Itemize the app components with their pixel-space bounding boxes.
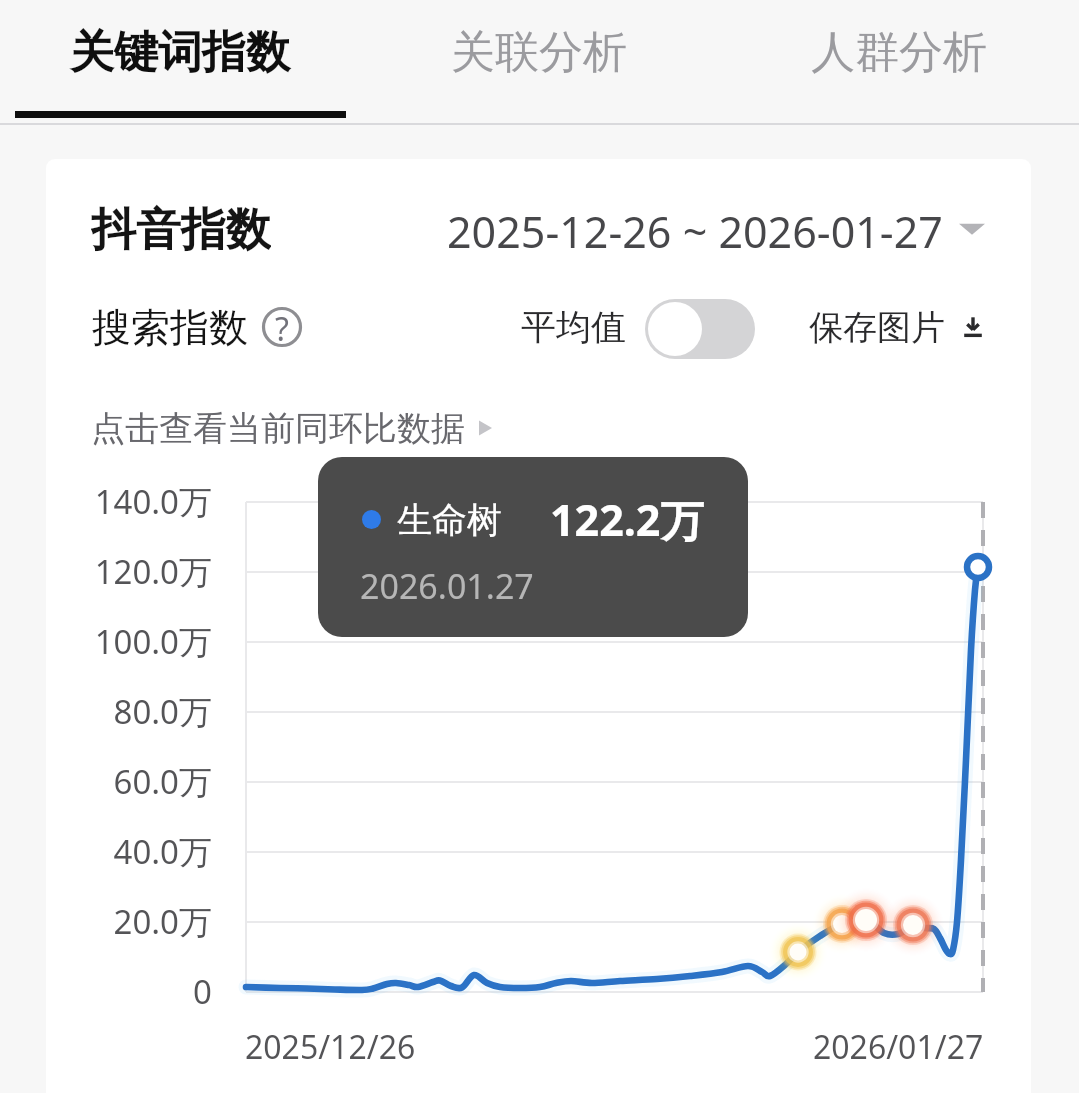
button[interactable]: 平均值开关 [645,299,755,359]
button[interactable]: 2025-12-26 ~ 2026-01-27 [447,202,985,256]
staticText: 120.0万 [94,549,212,594]
staticText: 2025/12/26 [245,1025,416,1069]
staticText: 抖音指数 [91,202,271,256]
staticText: 人群分析 [811,25,987,80]
staticText: 122.2万 [550,490,704,549]
staticText: 20.0万 [113,899,212,944]
staticText: 40.0万 [113,829,212,874]
staticText: 搜索指数 [92,303,248,352]
staticText: 100.0万 [94,619,212,664]
staticText: 2026/01/27 [813,1025,984,1069]
staticText: 关联分析 [451,25,627,80]
button[interactable]: 关键词指数 [0,0,359,125]
staticText: 平均值 [521,305,626,349]
staticText: ? [275,307,289,347]
staticText: 0 [193,969,212,1014]
staticText: 140.0万 [94,479,212,524]
staticText: 关键词指数 [70,25,290,80]
button[interactable]: 点击查看当前同环比数据 [91,404,495,452]
staticText: 2025-12-26 ~ 2026-01-27 [447,202,943,256]
other: 帮助说明 [262,307,302,347]
button[interactable]: 人群分析 [719,0,1079,125]
button[interactable]: 搜索指数 [92,298,302,356]
staticText: 生命树 [397,498,502,542]
button[interactable]: 保存图片 [809,298,984,356]
staticText: 保存图片 [809,306,945,349]
staticText: 80.0万 [113,689,212,734]
staticText: 点击查看当前同环比数据 [91,407,465,450]
button[interactable]: 关联分析 [359,0,719,125]
staticText: 60.0万 [113,759,212,804]
staticText: 2026.01.27 [360,563,534,609]
